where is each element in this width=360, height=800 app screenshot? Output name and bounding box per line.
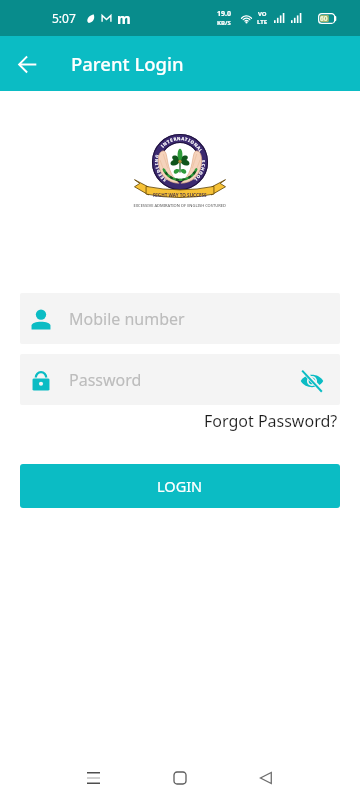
staticText: 19.0 — [217, 9, 231, 19]
button[interactable]: Mobile number — [20, 293, 340, 344]
button[interactable]: Password — [20, 354, 340, 405]
staticText: 5:07 — [52, 10, 76, 26]
staticText: Password — [69, 369, 142, 391]
staticText: m — [117, 9, 131, 27]
button[interactable]: Back — [242, 756, 290, 800]
button[interactable]: Recent apps — [69, 756, 117, 800]
button[interactable]: LOGIN — [20, 464, 340, 508]
staticText: LTE — [257, 18, 268, 26]
staticText: Forgot Password? — [204, 410, 338, 432]
staticText: Parent Login — [71, 51, 184, 76]
staticText: LOGIN — [157, 476, 203, 496]
button[interactable]: Forgot Password? — [202, 408, 340, 434]
button[interactable]: Toggle password visibility — [292, 360, 332, 400]
staticText: KB/S — [217, 19, 231, 27]
staticText: Mobile number — [69, 308, 185, 330]
staticText: VO — [258, 10, 267, 18]
button[interactable]: Back — [11, 48, 43, 80]
button[interactable]: Home — [156, 756, 204, 800]
